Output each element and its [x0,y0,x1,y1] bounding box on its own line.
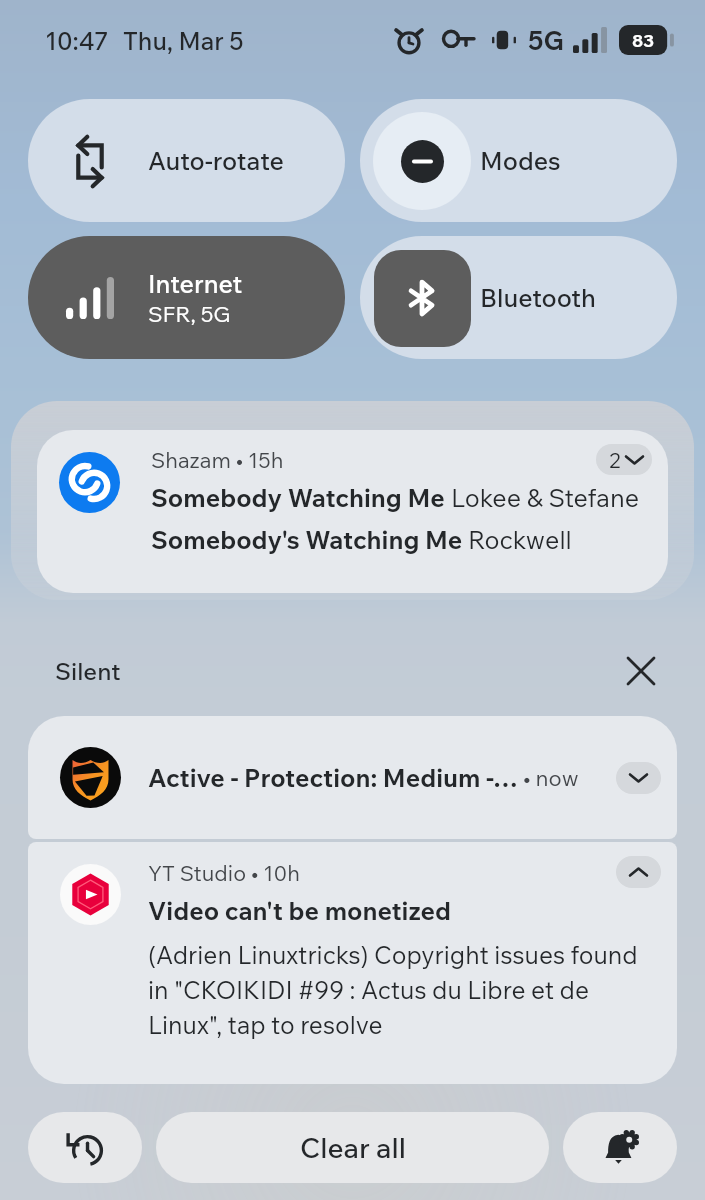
staticText: Clear all [300,1130,406,1165]
staticText: Internet [148,268,243,300]
staticText: Shazam • 15h [151,446,284,473]
staticText: SFR, 5G [148,300,231,328]
staticText: YT Studio • 10h [148,859,301,886]
staticText: 83 [632,29,655,52]
staticText: 2 [609,447,621,473]
staticText: Rockwell [468,524,572,556]
button[interactable]: 2 [596,444,652,475]
button[interactable]: Auto-rotate [28,99,345,222]
button[interactable]: Notification history [28,1112,142,1183]
button[interactable]: Modes [360,99,677,222]
staticText: Bluetooth [480,282,596,314]
staticText: (Adrien Linuxtricks) Copyright issues fo… [148,939,661,1040]
button[interactable]: Clear all [156,1112,549,1183]
staticText: 10:47 [45,25,109,56]
staticText: Thu, Mar 5 [123,25,244,56]
button[interactable]: Notification settings [563,1112,677,1183]
button[interactable]: Shazam • 15h [37,430,668,593]
staticText: Video can't be monetized [148,895,452,927]
staticText: Somebody Watching Me [151,482,451,514]
staticText: Active - Protection: Medium -… [148,762,518,794]
staticText: Modes [480,145,561,177]
staticText: Auto-rotate [148,145,284,177]
button[interactable]: Internet [28,236,345,359]
staticText: • now [518,764,579,792]
button[interactable]: Collapse notification [616,856,661,888]
staticText: Somebody's Watching Me [151,524,468,556]
staticText: Silent [55,656,121,686]
staticText: Lokee & Stefane [451,482,640,514]
button[interactable]: YT Studio • 10h [28,842,677,1084]
button[interactable]: Expand notification [616,762,661,794]
staticText: 5G [528,24,564,57]
button[interactable]: Active - Protection: Medium -… [28,716,677,839]
button[interactable]: Bluetooth [360,236,677,359]
button[interactable]: Dismiss silent notifications [621,651,661,691]
